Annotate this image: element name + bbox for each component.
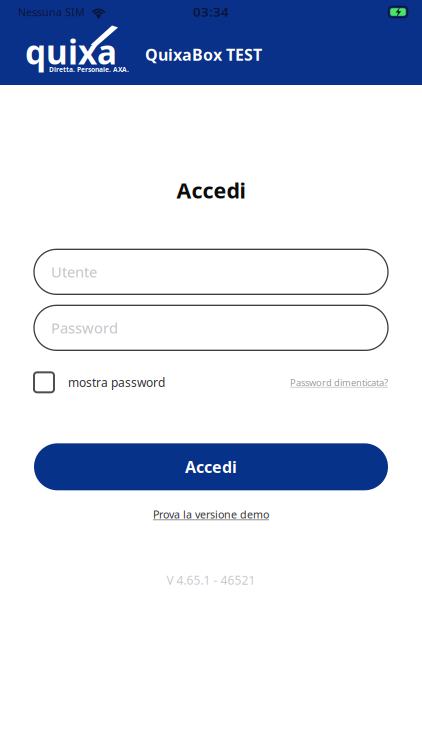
- button[interactable]: Password dimenticata?: [290, 376, 388, 388]
- button[interactable]: Prova la versione demo: [153, 507, 269, 521]
- staticText: Accedi: [176, 176, 245, 204]
- staticText: V 4.65.1 - 46521: [166, 572, 255, 588]
- staticText: Password dimenticata?: [290, 376, 388, 388]
- staticText: QuixaBox TEST: [145, 44, 262, 65]
- staticText: Utente: [51, 262, 97, 282]
- staticText: Diretta. Personale. AXA.: [49, 65, 129, 74]
- staticText: quixa: [25, 29, 117, 74]
- button[interactable]: mostra password: [34, 372, 165, 392]
- staticText: Password: [51, 318, 118, 338]
- staticText: Nessuna SIM: [18, 5, 85, 19]
- staticText: mostra password: [68, 374, 165, 390]
- button[interactable]: Accedi: [34, 443, 388, 490]
- staticText: Prova la versione demo: [153, 507, 269, 521]
- staticText: Accedi: [185, 456, 237, 477]
- staticText: 03:34: [193, 3, 229, 20]
